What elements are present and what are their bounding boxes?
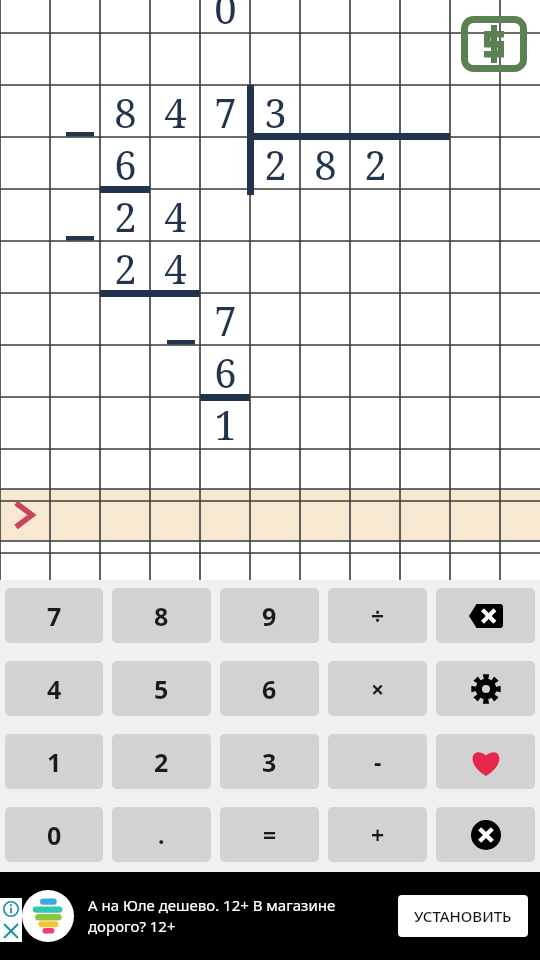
staticText: 2 bbox=[364, 137, 387, 189]
staticText: УСТАНОВИТЬ bbox=[414, 906, 512, 926]
staticText: = bbox=[263, 819, 277, 850]
staticText: 1 bbox=[214, 397, 237, 449]
staticText: 8 bbox=[114, 85, 137, 137]
button[interactable]: + bbox=[328, 807, 427, 862]
button[interactable]: 0 bbox=[5, 807, 103, 862]
staticText: 6 bbox=[214, 345, 237, 397]
button[interactable]: Close ad bbox=[0, 920, 22, 942]
staticText: 2 bbox=[114, 241, 137, 293]
button[interactable]: ÷ bbox=[328, 588, 427, 643]
button[interactable]: = bbox=[220, 807, 319, 862]
button[interactable]: 4 bbox=[5, 661, 103, 716]
button[interactable]: Buy premium bbox=[461, 16, 527, 72]
button[interactable]: - bbox=[328, 734, 427, 789]
staticText: × bbox=[371, 673, 385, 704]
button[interactable]: 3 bbox=[220, 734, 319, 789]
button[interactable]: Clear bbox=[436, 807, 535, 862]
staticText: 6 bbox=[262, 672, 277, 706]
staticText: 8 bbox=[314, 137, 337, 189]
staticText: 1 bbox=[47, 745, 62, 779]
staticText: - bbox=[374, 746, 382, 777]
button[interactable]: 5 bbox=[112, 661, 211, 716]
button[interactable]: УСТАНОВИТЬ bbox=[398, 895, 528, 937]
staticText: 2 bbox=[264, 137, 287, 189]
button[interactable]: 2 bbox=[112, 734, 211, 789]
staticText: 5 bbox=[154, 672, 169, 706]
button[interactable]: Favorite bbox=[436, 734, 535, 789]
staticText: 3 bbox=[262, 745, 277, 779]
staticText: 2 bbox=[154, 745, 169, 779]
staticText: . bbox=[158, 819, 165, 850]
button[interactable]: 8 bbox=[112, 588, 211, 643]
button[interactable]: Ad info bbox=[0, 898, 22, 920]
staticText: 4 bbox=[164, 241, 187, 293]
staticText: 4 bbox=[164, 189, 187, 241]
staticText: 2 bbox=[114, 189, 137, 241]
staticText: 0 bbox=[214, 0, 237, 33]
button[interactable]: Backspace bbox=[436, 588, 535, 643]
button[interactable]: 7 bbox=[5, 588, 103, 643]
button[interactable]: 1 bbox=[5, 734, 103, 789]
staticText: А на Юле дешево. 12+ В магазине дорого? … bbox=[88, 895, 388, 937]
staticText: 3 bbox=[264, 85, 287, 137]
staticText: + bbox=[371, 819, 385, 850]
button[interactable]: 9 bbox=[220, 588, 319, 643]
staticText: 7 bbox=[214, 85, 237, 137]
staticText: 7 bbox=[47, 599, 62, 633]
staticText: 9 bbox=[262, 599, 277, 633]
staticText: 4 bbox=[47, 672, 62, 706]
button[interactable]: Settings bbox=[436, 661, 535, 716]
button[interactable]: 6 bbox=[220, 661, 319, 716]
button[interactable]: × bbox=[328, 661, 427, 716]
button[interactable]: . bbox=[112, 807, 211, 862]
staticText: 7 bbox=[214, 293, 237, 345]
staticText: 6 bbox=[114, 137, 137, 189]
staticText: 8 bbox=[154, 599, 169, 633]
staticText: 0 bbox=[47, 818, 62, 852]
button[interactable]: А на Юле дешево. 12+ В магазине дорого? … bbox=[0, 872, 540, 960]
staticText: ÷ bbox=[371, 600, 385, 631]
staticText: 4 bbox=[164, 85, 187, 137]
